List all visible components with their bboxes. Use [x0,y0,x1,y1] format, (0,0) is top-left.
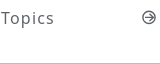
button[interactable]: Go to topics [140,8,158,26]
staticText: Topics [1,7,55,29]
